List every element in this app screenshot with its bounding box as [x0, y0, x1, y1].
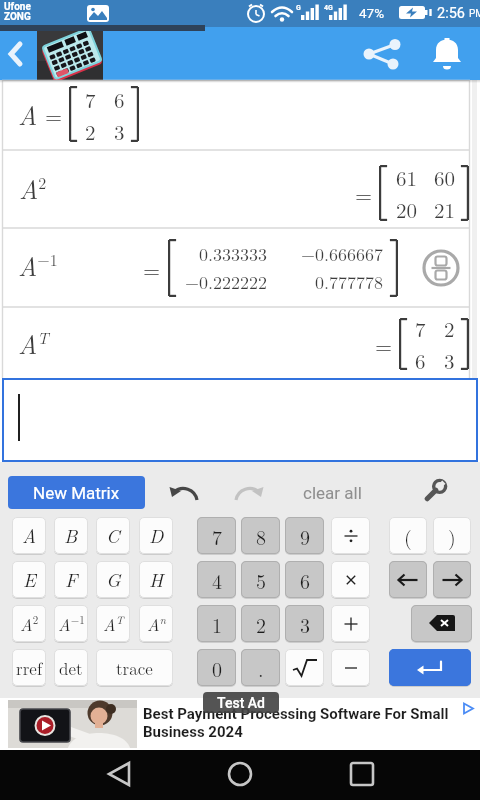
staticText: 9 [300, 522, 310, 550]
staticText: F [65, 566, 78, 593]
staticText: 61 [396, 162, 417, 192]
staticText: −0.666667 [301, 241, 384, 267]
staticText: clear all [303, 483, 362, 503]
staticText: E [23, 566, 36, 593]
staticText: 21 [434, 194, 455, 224]
staticText: 0 [212, 654, 222, 682]
staticText: A−1 [58, 612, 85, 636]
staticText: 20 [396, 194, 417, 224]
staticText: Test Ad [217, 695, 266, 711]
staticText: Best Payment Processing Software For Sma… [143, 705, 449, 723]
staticText: PM [469, 8, 480, 20]
staticText: A2 [20, 612, 39, 636]
staticText: = [355, 178, 373, 209]
staticText: 6 [300, 566, 310, 594]
staticText: 0.333333 [199, 241, 268, 267]
staticText: ( [404, 522, 412, 550]
staticText: trace [116, 656, 153, 680]
staticText: H [149, 566, 164, 593]
staticText: 1 [212, 610, 222, 638]
staticText: 8 [256, 522, 266, 550]
staticText: = [45, 99, 63, 130]
staticText: 4G [324, 4, 333, 12]
staticText: 7 [85, 84, 96, 114]
staticText: 4 [212, 566, 222, 594]
staticText: ZONG [4, 11, 31, 23]
staticText: G [296, 4, 301, 12]
staticText: 0.777778 [315, 269, 384, 295]
staticText: 2 [256, 610, 266, 638]
staticText: −0.222222 [185, 269, 268, 295]
staticText: . [258, 654, 264, 682]
staticText: New Matrix [33, 483, 120, 503]
staticText: AT [18, 325, 49, 362]
staticText: 2:56 [437, 5, 469, 22]
staticText: G [106, 566, 121, 593]
staticText: Business 2024 [143, 723, 243, 741]
staticText: B [64, 522, 78, 549]
staticText: = [143, 253, 161, 284]
staticText: 6 [114, 84, 125, 114]
staticText: A [18, 96, 38, 133]
staticText: 6 [415, 345, 426, 375]
staticText: D [149, 522, 164, 549]
staticText: 3 [114, 116, 125, 144]
staticText: 3 [444, 345, 455, 375]
staticText: 7 [415, 313, 426, 343]
staticText: rref [16, 656, 43, 680]
staticText: C [106, 522, 120, 549]
staticText: Ufone [4, 1, 31, 13]
staticText: det [59, 656, 83, 680]
staticText: A2 [19, 170, 47, 207]
staticText: AT [103, 612, 124, 636]
staticText: 47% [359, 5, 385, 21]
staticText: = [375, 329, 393, 360]
staticText: 5 [256, 566, 266, 594]
staticText: 7 [212, 522, 222, 550]
staticText: ) [448, 522, 456, 550]
staticText: A [22, 522, 37, 549]
staticText: 3 [300, 610, 310, 638]
staticText: 60 [434, 162, 455, 192]
staticText: An [147, 612, 166, 636]
staticText: A−1 [18, 247, 58, 284]
staticText: 2 [444, 313, 455, 343]
staticText: 2 [85, 116, 96, 144]
